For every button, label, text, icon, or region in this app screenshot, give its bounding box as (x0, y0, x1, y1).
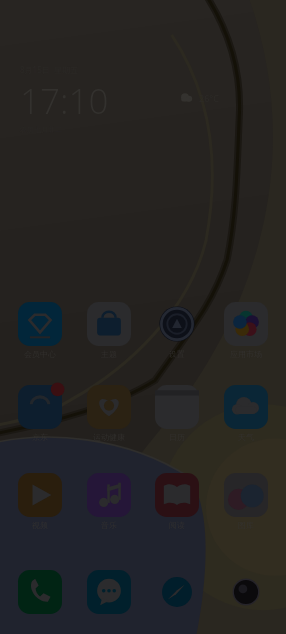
staticText: 京东 (32, 432, 48, 442)
button[interactable]: 京东 (11, 385, 69, 442)
staticText: 视频 (32, 520, 48, 530)
staticText: 音乐 (101, 520, 117, 530)
button[interactable]: 图库 (217, 473, 275, 530)
staticText: 主题 (101, 349, 117, 359)
button[interactable]: 日历 (148, 385, 206, 442)
button[interactable]: camera (217, 570, 275, 614)
button[interactable]: 阅读 (148, 473, 206, 530)
staticText: 设置 (169, 349, 185, 359)
button[interactable]: 视频 (11, 473, 69, 530)
staticText: 应用市场 (230, 349, 262, 359)
button[interactable]: 主题 (80, 302, 138, 359)
button[interactable]: 音乐 (80, 473, 138, 530)
button[interactable]: Weather (176, 88, 219, 108)
button[interactable]: 天气 (217, 385, 275, 442)
button[interactable]: sms (80, 570, 138, 614)
staticText: 图库 (238, 520, 254, 530)
button[interactable]: browser (148, 570, 206, 614)
button[interactable]: 运动健康 (80, 385, 138, 442)
staticText: 阅读 (169, 520, 185, 530)
button[interactable]: 设置 (148, 302, 206, 359)
staticText: 运动健康 (93, 432, 125, 442)
button[interactable]: phone (11, 570, 69, 614)
button[interactable]: 会员中心 (11, 302, 69, 359)
button[interactable]: 应用市场 (217, 302, 275, 359)
